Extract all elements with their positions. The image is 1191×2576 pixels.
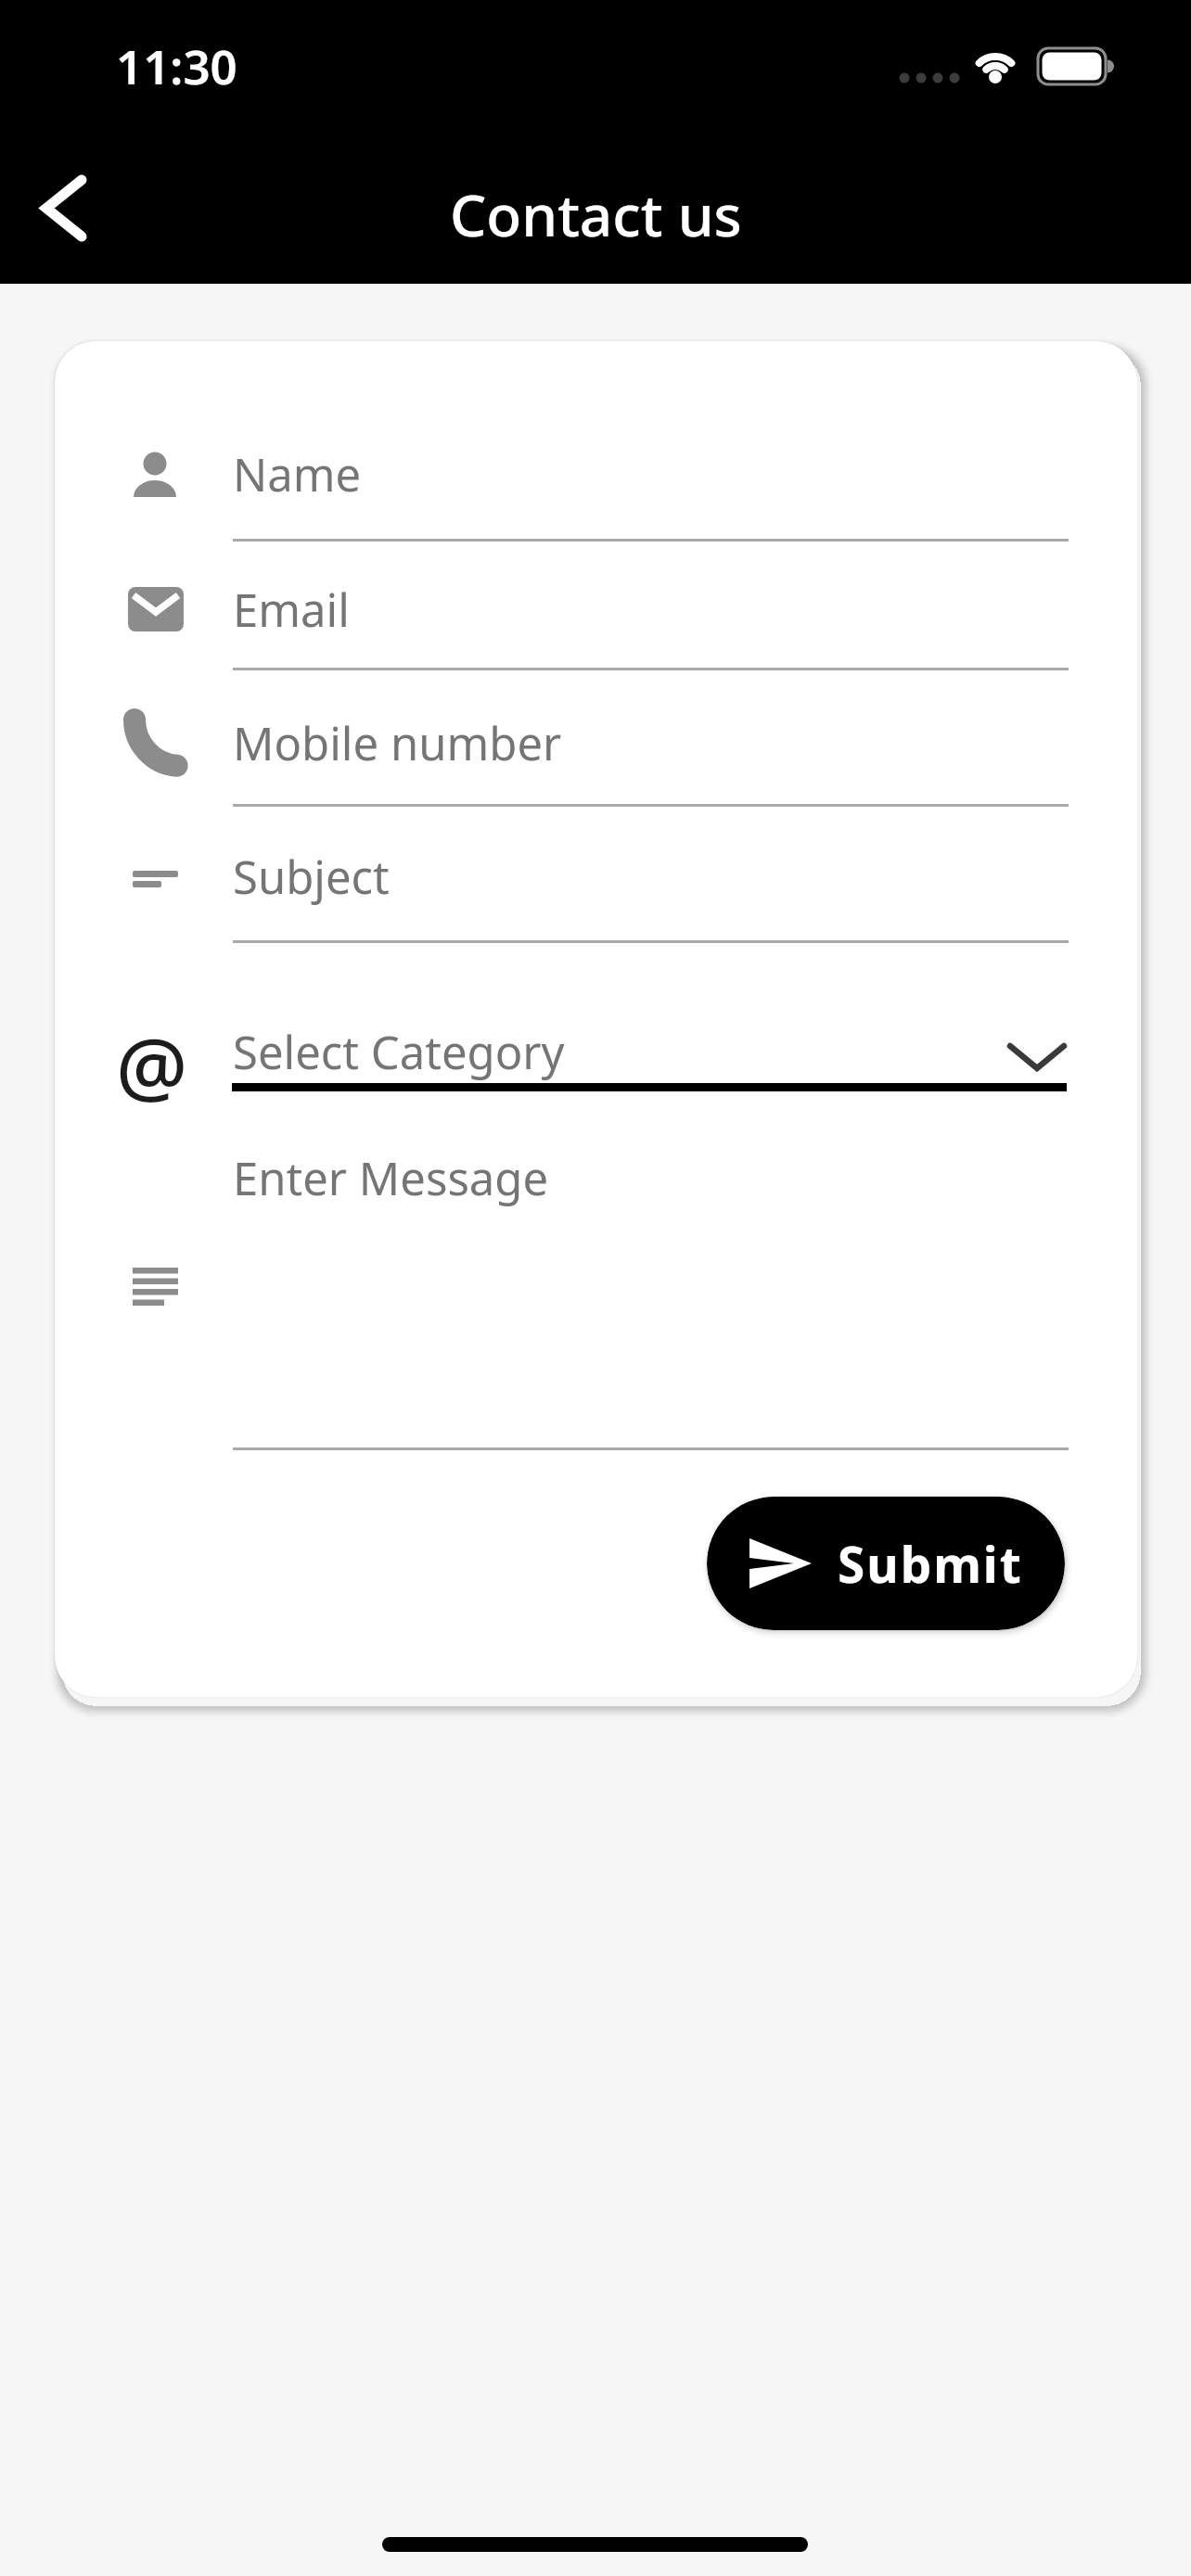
button[interactable] [55, 698, 1137, 814]
button[interactable] [22, 158, 106, 260]
staticText: Email [233, 579, 350, 641]
staticText: Name [233, 443, 362, 505]
staticText: Enter Message [233, 1147, 549, 1209]
button[interactable] [55, 564, 1137, 680]
staticText: 11:30 [116, 33, 237, 93]
staticText: @ [116, 1011, 188, 1108]
button[interactable] [55, 1004, 1137, 1111]
button[interactable] [55, 1139, 1137, 1450]
staticText: Mobile number [233, 712, 562, 774]
staticText: Submit [838, 1530, 1023, 1597]
button[interactable] [55, 429, 1137, 545]
button[interactable]: Submit [707, 1497, 1065, 1630]
staticText: Contact us [450, 175, 742, 253]
button[interactable] [55, 833, 1137, 949]
staticText: Select Category [233, 1021, 565, 1083]
staticText: Subject [233, 846, 390, 908]
